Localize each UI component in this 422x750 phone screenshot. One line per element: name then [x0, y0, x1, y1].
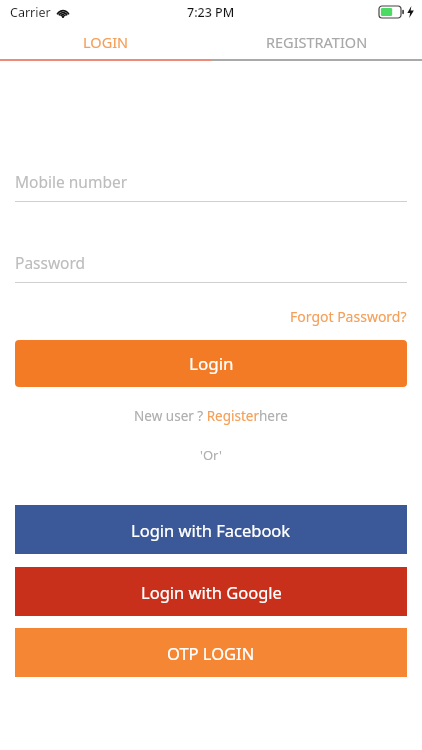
staticText: 7:23 PM	[187, 4, 235, 21]
button[interactable]: OTP LOGIN	[15, 628, 407, 677]
button[interactable]: Forgot Password?	[290, 307, 407, 326]
staticText: Login with Google	[141, 581, 282, 603]
button[interactable]: REGISTRATION	[211, 24, 422, 59]
staticText: 'Or'	[200, 446, 222, 464]
staticText: LOGIN	[83, 32, 129, 52]
button[interactable]: New user ? Registerhere	[134, 407, 288, 425]
staticText: REGISTRATION	[266, 32, 368, 52]
staticText: OTP LOGIN	[167, 642, 255, 664]
button[interactable]: Login	[15, 340, 407, 387]
staticText: Mobile number	[15, 171, 128, 192]
button[interactable]: Login with Google	[15, 567, 407, 616]
staticText: Login	[189, 352, 234, 375]
staticText: New user ? Registerhere	[134, 407, 288, 425]
staticText: Forgot Password?	[290, 307, 407, 326]
staticText: Carrier	[10, 4, 51, 21]
staticText: Login with Facebook	[131, 519, 291, 541]
button[interactable]: LOGIN	[0, 24, 211, 59]
staticText: Password	[15, 252, 86, 273]
button[interactable]: Password	[15, 252, 407, 283]
button[interactable]: Login with Facebook	[15, 505, 407, 554]
button[interactable]: Mobile number	[15, 171, 407, 202]
